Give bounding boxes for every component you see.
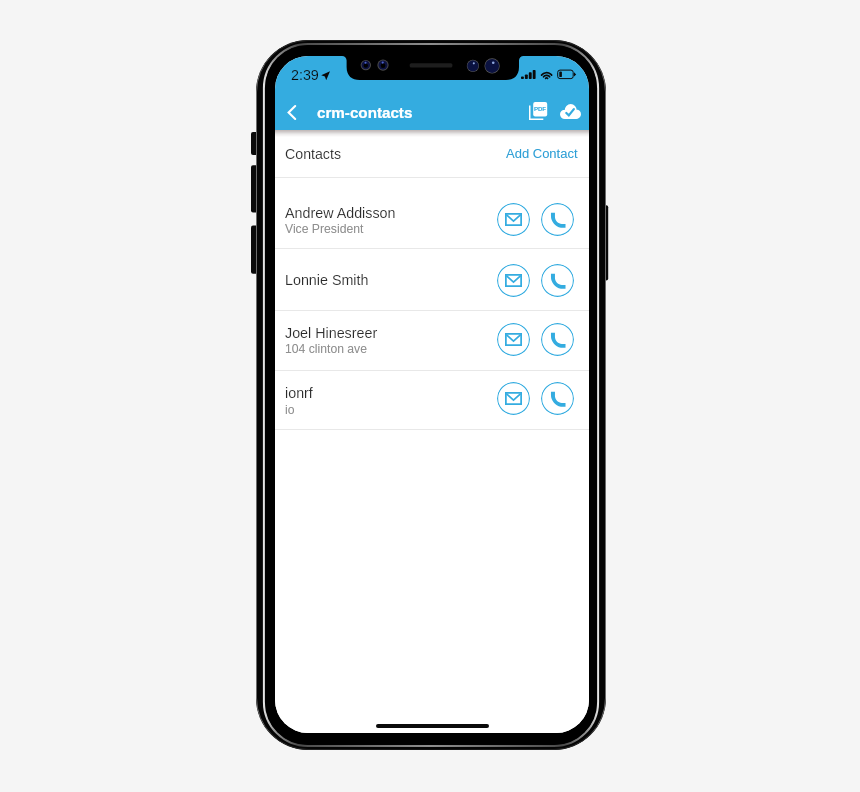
staticText: Contacts <box>285 146 341 162</box>
staticText: 104 clinton ave <box>285 342 367 356</box>
button[interactable]: Export PDF <box>526 98 550 124</box>
button[interactable]: Call <box>541 382 574 415</box>
staticText: ionrf <box>285 385 313 401</box>
button[interactable]: Contacts <box>275 130 589 177</box>
button[interactable]: Sync to cloud <box>556 98 584 124</box>
staticText: io <box>285 403 295 417</box>
button[interactable]: Back <box>278 93 305 131</box>
button[interactable]: Email <box>497 323 530 356</box>
staticText: crm-contacts <box>317 104 413 121</box>
button[interactable]: Joel Hinesreer <box>275 310 589 370</box>
staticText: PDF <box>534 105 546 112</box>
button[interactable]: Call <box>541 203 574 236</box>
button[interactable]: Email <box>497 382 530 415</box>
button[interactable]: Email <box>497 203 530 236</box>
button[interactable]: ionrf <box>275 370 589 429</box>
staticText: Joel Hinesreer <box>285 325 378 341</box>
button[interactable]: Andrew Addisson <box>275 177 589 248</box>
staticText: Andrew Addisson <box>285 205 396 221</box>
button[interactable]: Call <box>541 264 574 297</box>
staticText: 2:39 <box>291 67 319 83</box>
staticText: Add Contact <box>506 146 578 161</box>
staticText: Lonnie Smith <box>285 272 369 288</box>
staticText: Vice President <box>285 222 364 236</box>
button[interactable]: Call <box>541 323 574 356</box>
button[interactable]: Lonnie Smith <box>275 248 589 310</box>
button[interactable]: Email <box>497 264 530 297</box>
button[interactable]: Add Contact <box>497 134 580 173</box>
